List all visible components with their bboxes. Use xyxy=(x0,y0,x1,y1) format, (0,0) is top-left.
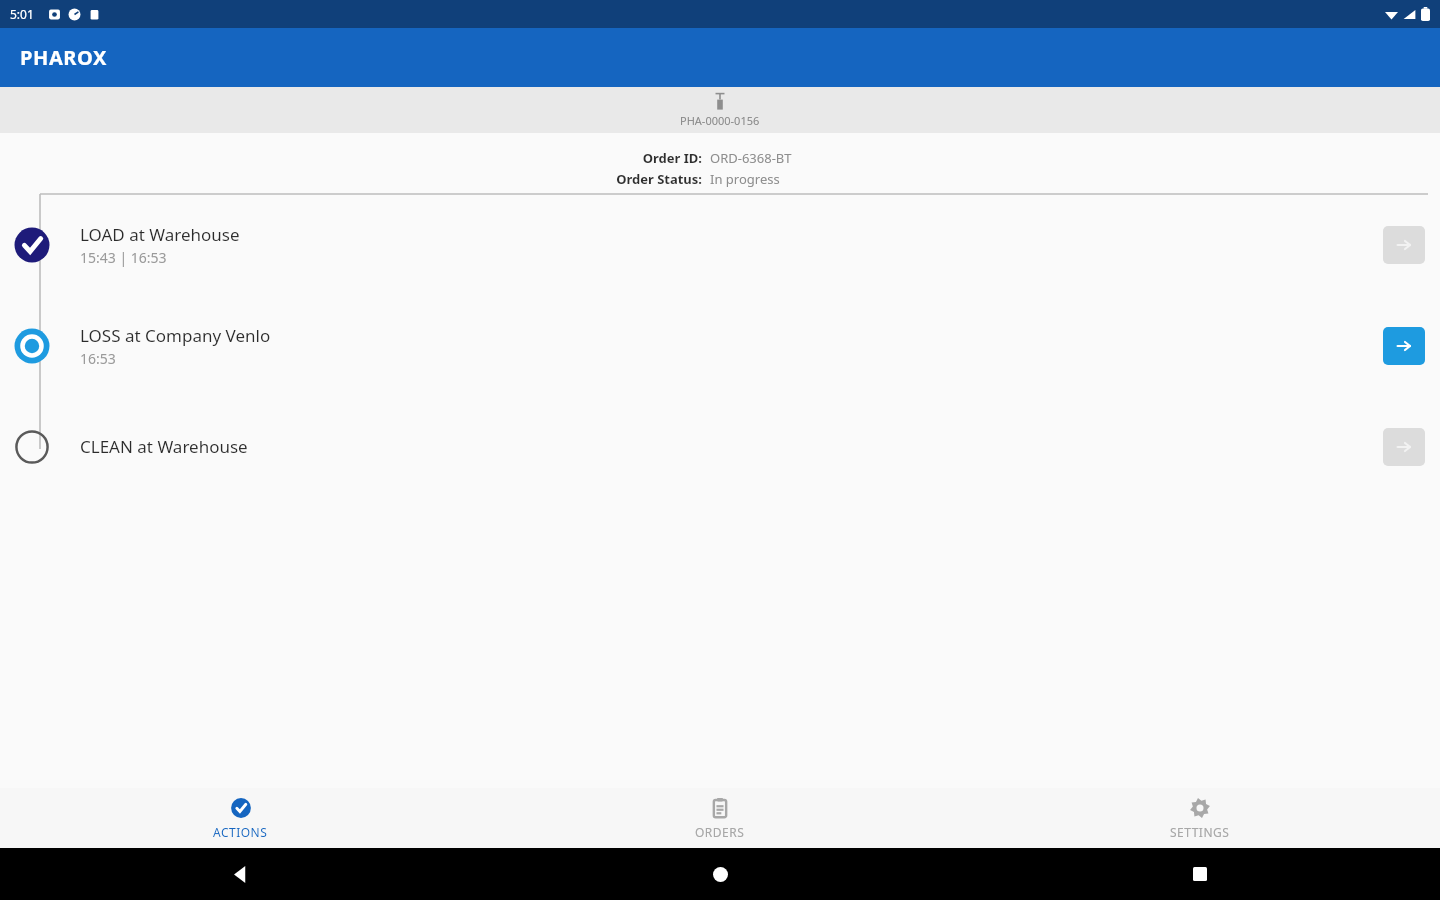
staticText: 16:53 xyxy=(80,349,116,368)
staticText: 5:01 xyxy=(10,6,34,22)
staticText: ACTIONS xyxy=(213,824,268,840)
staticText: ORDERS xyxy=(695,824,745,840)
button[interactable]: LOAD at Warehouse xyxy=(0,194,1440,295)
button[interactable]: Recent apps xyxy=(1180,854,1220,894)
staticText: LOSS at Company Venlo xyxy=(80,324,271,347)
staticText: Order ID: xyxy=(642,149,702,167)
staticText: PHA-0000-0156 xyxy=(680,113,760,128)
button[interactable]: Home xyxy=(700,854,740,894)
staticText: 15:43 | 16:53 xyxy=(80,248,167,267)
staticText: Order Status: xyxy=(616,170,702,188)
button[interactable]: ORDERS xyxy=(480,788,960,848)
staticText: LOAD at Warehouse xyxy=(80,223,240,246)
button[interactable]: Next step xyxy=(1383,226,1425,264)
button[interactable]: Back xyxy=(220,854,260,894)
staticText: In progress xyxy=(710,170,780,188)
button[interactable]: LOSS at Company Venlo xyxy=(0,295,1440,396)
staticText: ORD-6368-BT xyxy=(710,149,792,167)
staticText: SETTINGS xyxy=(1170,824,1230,840)
button[interactable]: SETTINGS xyxy=(960,788,1440,848)
button[interactable]: ACTIONS xyxy=(0,788,480,848)
button[interactable]: Next step xyxy=(1383,327,1425,365)
staticText: CLEAN at Warehouse xyxy=(80,435,248,458)
staticText: PHAROX xyxy=(20,44,108,71)
button[interactable]: Next step xyxy=(1383,428,1425,466)
button[interactable]: CLEAN at Warehouse xyxy=(0,396,1440,497)
